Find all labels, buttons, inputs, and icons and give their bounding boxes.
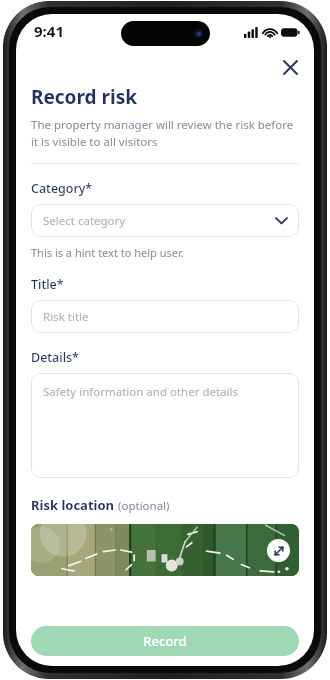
staticText: 9:41 [34,21,64,41]
staticText: Risk location [31,496,118,514]
staticText: Category* [31,180,93,197]
staticText: The property manager will review the ris… [31,117,299,149]
staticText: Select category [43,213,126,229]
button[interactable]: Expand map [31,524,299,576]
button[interactable]: Safety information and other details [31,373,299,478]
staticText: Safety information and other details [43,384,238,400]
button[interactable]: Expand map [267,539,290,562]
staticText: This is a hint text to help user. [31,245,184,260]
button[interactable]: Risk title [31,300,299,333]
staticText: Details* [31,349,79,366]
staticText: Title* [31,276,64,293]
staticText: Record risk [31,84,138,110]
staticText: Record [143,632,187,650]
staticText: Risk title [43,309,89,325]
staticText: (optional) [118,498,170,514]
button[interactable]: Close [275,52,305,82]
button[interactable]: Record [31,626,299,656]
button[interactable]: Select category [31,204,299,237]
